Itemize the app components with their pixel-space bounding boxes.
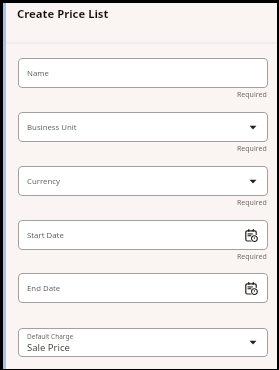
button[interactable]: End Date <box>18 273 268 303</box>
staticText: Create Price List <box>17 6 109 21</box>
button[interactable]: Business Unit <box>18 112 268 142</box>
staticText: Sale Price <box>27 341 70 354</box>
button[interactable]: Start Date <box>18 220 268 250</box>
staticText: End Date <box>27 283 61 294</box>
staticText: Required <box>237 252 267 262</box>
staticText: Currency <box>27 176 60 187</box>
staticText: Start Date <box>27 230 64 241</box>
staticText: Name <box>27 68 49 79</box>
button[interactable]: Name <box>18 58 268 88</box>
staticText: Required <box>237 144 267 154</box>
staticText: Required <box>237 90 267 100</box>
staticText: Default Charge <box>27 332 74 341</box>
button[interactable]: Default Charge <box>18 328 268 357</box>
button[interactable]: Currency <box>18 166 268 196</box>
staticText: Business Unit <box>27 122 77 133</box>
staticText: Required <box>237 198 267 208</box>
